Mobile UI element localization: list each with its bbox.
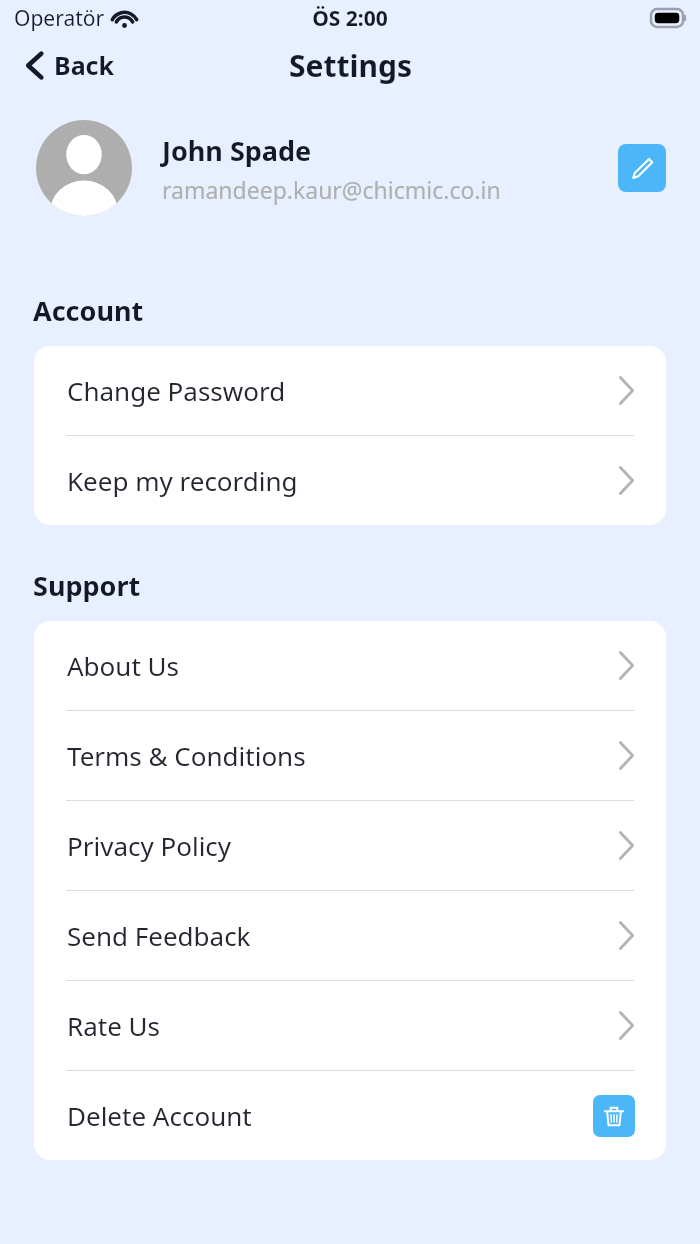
staticText: Send Feedback — [67, 918, 618, 953]
staticText: Keep my recording — [67, 463, 618, 498]
button[interactable]: Rate Us — [34, 981, 666, 1070]
staticText: Support — [33, 567, 141, 604]
button[interactable]: Delete Account — [34, 1071, 666, 1160]
staticText: Back — [54, 48, 115, 82]
staticText: Delete Account — [67, 1098, 593, 1133]
staticText: Account — [33, 292, 144, 329]
staticText: Terms & Conditions — [67, 738, 618, 773]
staticText: ÖS 2:00 — [312, 4, 388, 33]
staticText: John Spade — [162, 132, 312, 169]
button[interactable]: Change Password — [34, 346, 666, 435]
button[interactable]: Delete account — [593, 1095, 635, 1137]
button[interactable]: Keep my recording — [34, 436, 666, 525]
button[interactable]: About Us — [34, 621, 666, 710]
button[interactable]: Terms & Conditions — [34, 711, 666, 800]
staticText: Operatör — [14, 4, 105, 33]
staticText: About Us — [67, 648, 618, 683]
button[interactable]: Send Feedback — [34, 891, 666, 980]
button[interactable]: Privacy Policy — [34, 801, 666, 890]
staticText: Change Password — [67, 373, 618, 408]
button[interactable]: Edit profile — [618, 144, 666, 192]
staticText: Rate Us — [67, 1008, 618, 1043]
staticText: Settings — [289, 45, 412, 86]
staticText: ramandeep.kaur@chicmic.co.in — [162, 174, 501, 205]
staticText: Privacy Policy — [67, 828, 618, 863]
button[interactable]: Back — [0, 40, 133, 90]
